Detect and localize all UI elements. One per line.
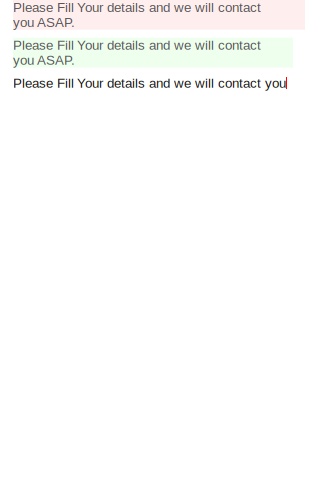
staticText: Please Fill Your details and we will con… (13, 0, 286, 30)
staticText: Please Fill Your details and we will con… (13, 38, 286, 68)
staticText: Please Fill Your details and we will con… (13, 76, 286, 90)
